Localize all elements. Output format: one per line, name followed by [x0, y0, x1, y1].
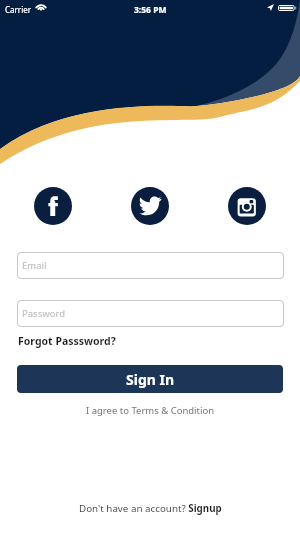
button[interactable]: Password [17, 300, 284, 327]
staticText: Carrier [5, 4, 32, 15]
staticText: Email [22, 259, 47, 272]
staticText: Don't have an account? Signup [79, 502, 222, 515]
button[interactable]: Sign in with Facebook [34, 187, 72, 225]
staticText: Sign In [126, 370, 175, 389]
staticText: 3:56 PM [134, 4, 167, 16]
staticText: Password [22, 307, 65, 320]
staticText: Forgot Passsword? [18, 334, 116, 348]
button[interactable]: Email [17, 252, 284, 279]
button[interactable]: Sign in with Instagram [228, 187, 266, 225]
button[interactable]: Sign in with Twitter [131, 187, 169, 225]
staticText: I agree to Terms & Condition [86, 404, 215, 417]
button[interactable]: Forgot Passsword? [17, 332, 117, 350]
button[interactable]: I agree to Terms & Condition [84, 402, 217, 419]
button[interactable]: Sign In [17, 365, 283, 393]
button[interactable]: Don't have an account? Signup [77, 500, 224, 517]
